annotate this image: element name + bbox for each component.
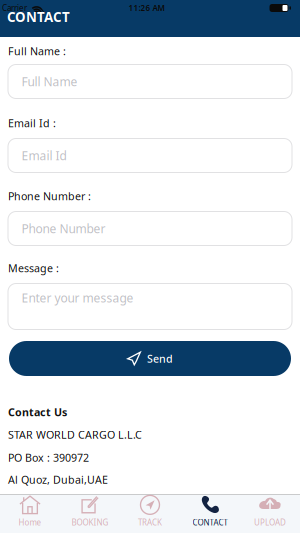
button[interactable]: Email Id [7,138,292,173]
staticText: Contact Us [8,405,67,419]
staticText: Home [18,517,41,528]
staticText: Phone Number : [8,189,91,203]
staticText: Phone Number [21,220,105,236]
staticText: Email Id : [8,116,56,130]
button[interactable]: UPLOAD [240,495,300,533]
button[interactable]: Home [0,495,60,533]
staticText: Al Quoz, Dubai,UAE [8,472,108,487]
button[interactable]: TRACK [120,495,180,533]
staticText: PO Box : 390972 [8,450,89,465]
staticText: Carrier [2,3,27,13]
button[interactable]: Phone Number [7,211,292,246]
staticText: CONTACT [192,517,227,528]
button[interactable]: Send [9,341,291,376]
staticText: Message : [8,261,59,275]
staticText: UPLOAD [254,517,286,528]
staticText: CONTACT [7,8,70,26]
staticText: STAR WORLD CARGO L.L.C [8,427,142,442]
staticText: Full Name [21,73,77,89]
staticText: Enter your message [21,290,133,306]
staticText: Send [147,351,173,366]
button[interactable]: CONTACT [180,495,240,533]
staticText: TRACK [138,517,162,528]
staticText: 11:26 AM [128,3,164,13]
staticText: BOOKING [71,517,108,528]
button[interactable]: BOOKING [60,495,120,533]
staticText: Full Name : [8,44,66,58]
button[interactable]: Enter your message [7,283,292,330]
staticText: Email Id [21,147,66,163]
button[interactable]: Full Name [7,64,292,99]
